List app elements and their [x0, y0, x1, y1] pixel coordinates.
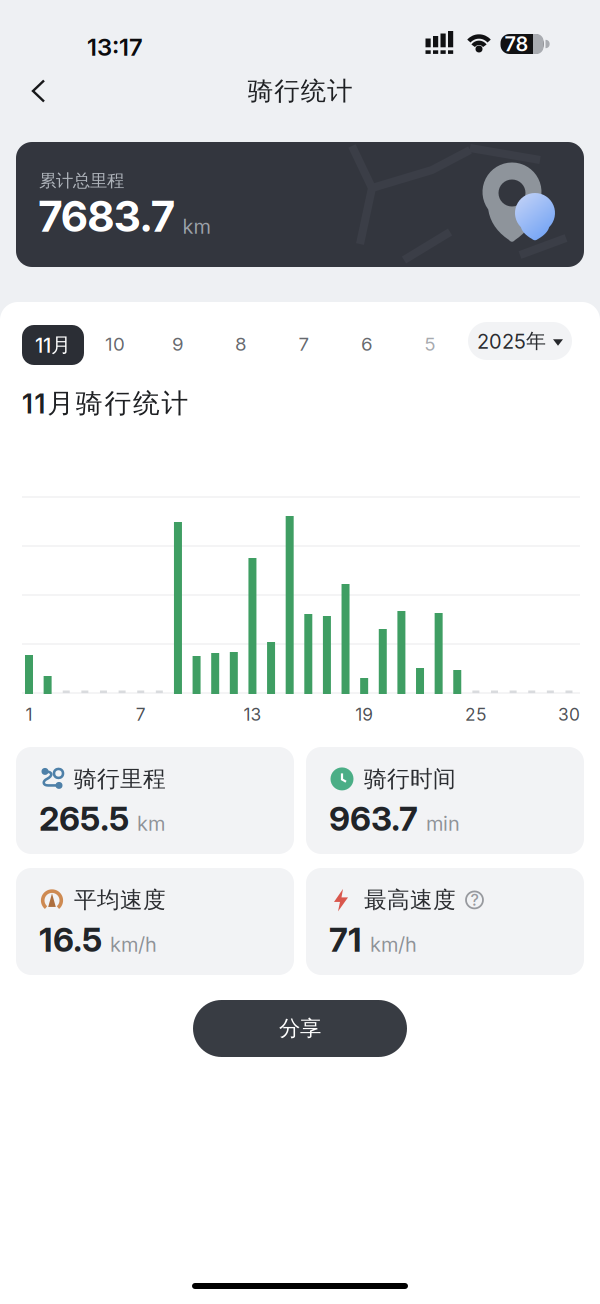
staticText: 6	[361, 333, 373, 355]
button[interactable]: 7	[282, 324, 326, 364]
staticText: 30	[558, 704, 580, 725]
button[interactable]: 6	[345, 324, 389, 364]
staticText: ?	[470, 890, 478, 909]
button[interactable]: 9	[156, 324, 200, 364]
button[interactable]: 最高速度	[306, 868, 584, 975]
staticText: 265.5	[39, 799, 129, 838]
button[interactable]: 8	[219, 324, 263, 364]
staticText: 2025年	[477, 329, 546, 353]
staticText: min	[426, 812, 460, 835]
button[interactable]: 2025年	[468, 322, 572, 360]
button[interactable]: 10	[93, 324, 137, 364]
staticText: 16.5	[39, 920, 102, 959]
staticText: 7	[298, 333, 309, 355]
staticText: 分享	[279, 1015, 321, 1042]
button[interactable]: 分享	[193, 1000, 407, 1057]
staticText: 25	[465, 704, 487, 725]
staticText: 骑行统计	[248, 75, 352, 106]
staticText: 963.7	[329, 799, 418, 838]
staticText: km	[182, 215, 210, 238]
staticText: 5	[424, 333, 435, 355]
staticText: 11月骑行统计	[22, 387, 189, 420]
staticText: 13:17	[87, 33, 143, 61]
staticText: 1	[25, 704, 32, 725]
staticText: km/h	[370, 933, 417, 956]
staticText: 19	[355, 704, 373, 725]
button[interactable]: 11月	[22, 325, 84, 365]
button[interactable]: Back	[18, 75, 62, 106]
staticText: 13	[243, 704, 261, 725]
staticText: km/h	[110, 933, 157, 956]
staticText: 71	[329, 920, 362, 959]
staticText: 11月	[35, 333, 71, 357]
staticText: 8	[235, 333, 247, 355]
staticText: 10	[105, 333, 125, 355]
staticText: km	[137, 812, 165, 835]
staticText: 7683.7	[38, 191, 175, 241]
staticText: 平均速度	[74, 886, 166, 914]
button[interactable]: 5	[408, 324, 452, 364]
staticText: 骑行时间	[364, 765, 456, 793]
staticText: 7	[136, 704, 146, 725]
button[interactable]: 骑行时间	[306, 747, 584, 854]
staticText: 78	[504, 32, 528, 56]
button[interactable]: 骑行里程	[16, 747, 294, 854]
staticText: 9	[172, 333, 184, 355]
staticText: 骑行里程	[74, 765, 166, 793]
button[interactable]: 平均速度	[16, 868, 294, 975]
staticText: 最高速度	[364, 886, 456, 914]
staticText: 累计总里程	[39, 170, 124, 191]
